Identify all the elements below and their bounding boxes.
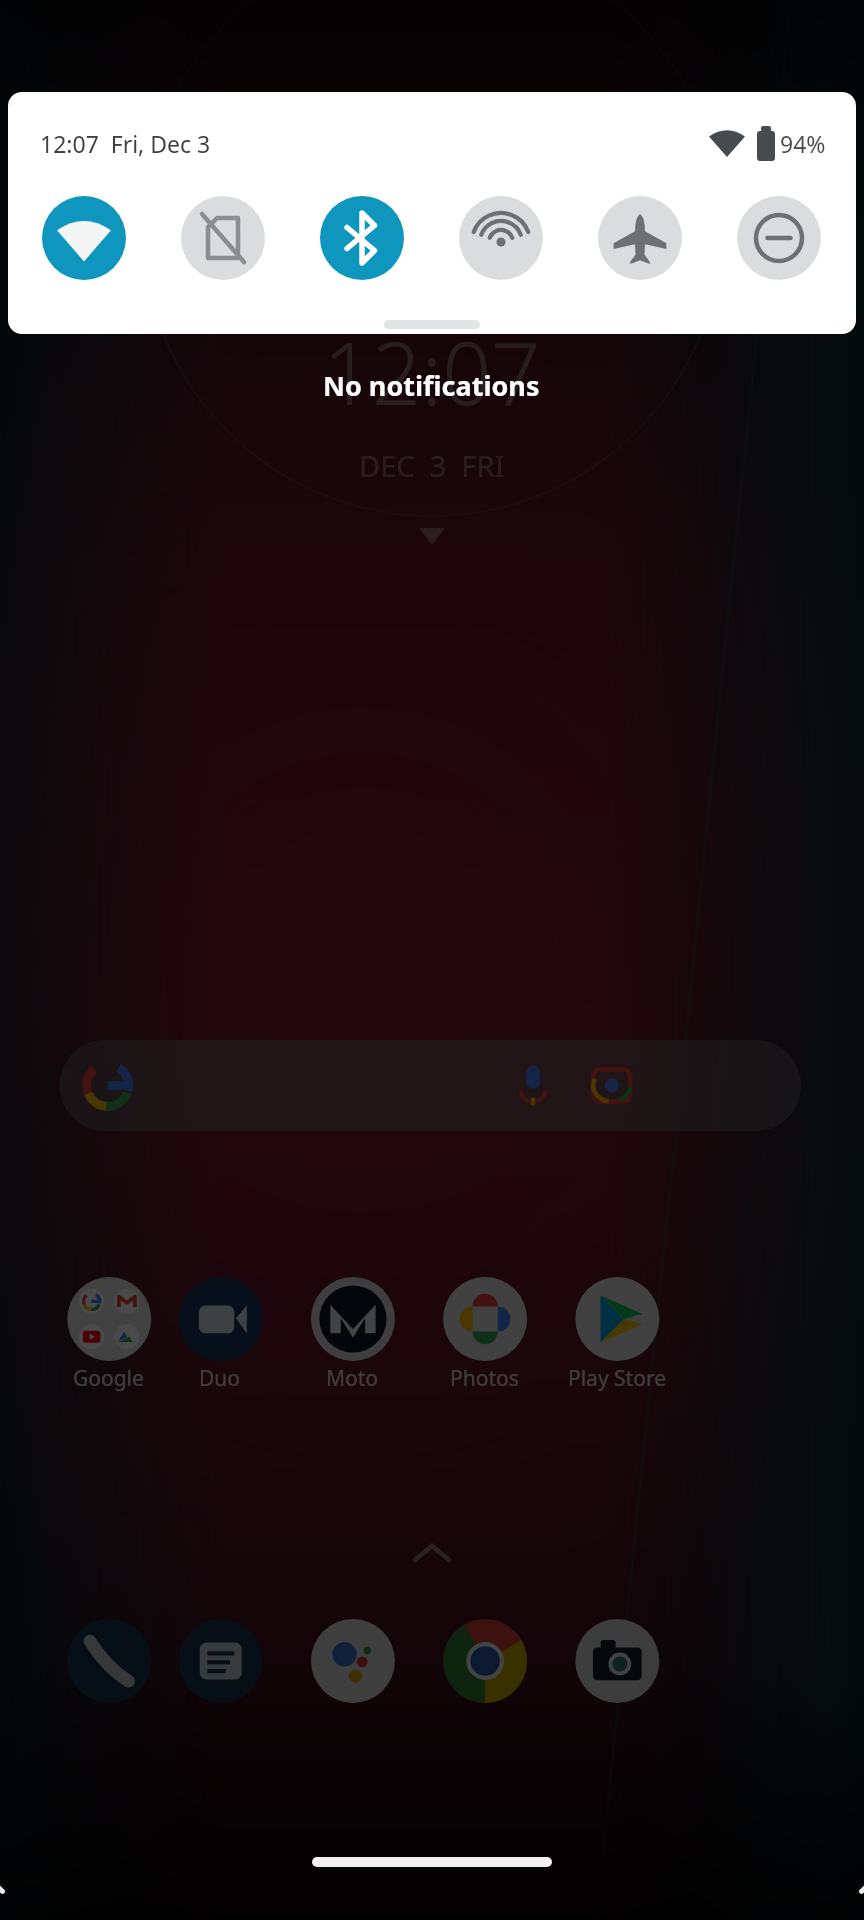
staticText: DEC 3 FRI [359, 446, 505, 485]
staticText: Duo [199, 1364, 241, 1393]
staticText: 94% [780, 128, 826, 159]
staticText: Play Store [568, 1364, 666, 1393]
button[interactable]: Hotspot [459, 196, 543, 280]
button[interactable]: Airplane mode [598, 196, 682, 280]
staticText: Moto [326, 1364, 379, 1393]
button[interactable]: Bluetooth [320, 196, 404, 280]
staticText: 12:07 [323, 313, 541, 430]
button[interactable]: Wi-Fi [42, 196, 126, 280]
staticText: 12:07 Fri, Dec 3 [40, 128, 211, 159]
staticText: Google [73, 1364, 144, 1393]
button[interactable]: Do Not Disturb [737, 196, 821, 280]
button[interactable]: Mobile data [181, 196, 265, 280]
staticText: Photos [450, 1364, 519, 1393]
staticText: No notifications [323, 367, 540, 404]
